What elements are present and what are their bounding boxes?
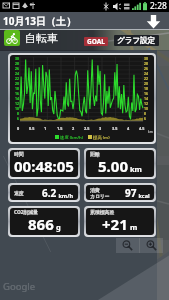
staticText: 10 [144,106,148,111]
button[interactable]: 距離 [86,150,154,177]
staticText: 速度 [14,190,24,196]
staticText: 28 [15,61,19,66]
staticText: 速度 (km/h) [59,134,83,140]
staticText: 累積標高差 [90,209,114,215]
staticText: 4.5 [139,126,145,131]
staticText: Google [3,280,36,293]
staticText: 866 [28,214,54,234]
button[interactable]: Zoom in [140,238,163,253]
button[interactable]: 消費 カロリー [86,185,154,200]
staticText: 16 [144,91,148,96]
staticText: 14 [144,96,148,101]
staticText: 26 [15,66,19,71]
button[interactable]: 10月13日（土） [0,12,169,30]
staticText: 18 [144,86,148,91]
staticText: 8 [17,111,19,116]
staticText: km [128,164,142,174]
staticText: 2 [72,126,75,131]
staticText: 標高 (m) [92,134,110,140]
staticText: 26 [144,66,148,71]
staticText: 時間 [14,151,24,157]
staticText: 22 [15,76,19,81]
staticText: 24 [144,71,148,76]
staticText: グラフ設定 [117,36,156,45]
staticText: 30 [15,56,19,61]
staticText: 24 [15,71,19,76]
staticText: 0 [17,126,20,131]
button[interactable]: 速度 [10,185,78,200]
staticText: km/h [57,192,74,199]
button[interactable]: Bicycle activity [4,30,20,46]
staticText: 30 [144,56,148,61]
staticText: 14 [15,96,19,101]
button[interactable]: CO2削減量 [10,208,78,235]
staticText: 22 [144,76,148,81]
staticText: kcal [137,192,150,199]
staticText: 自転車 [25,31,58,45]
staticText: 5.00 [98,156,128,176]
staticText: 18 [15,86,19,91]
staticText: 3 [99,126,102,131]
staticText: 6 [144,116,146,121]
staticText: g [54,222,61,232]
staticText: 8 [144,111,146,116]
button[interactable]: GOAL [84,37,108,46]
staticText: 10月13日（土） [3,14,76,28]
button[interactable]: 累積標高差 [86,208,154,235]
other: Download [146,14,161,29]
staticText: m [128,222,138,232]
staticText: 12 [15,101,19,106]
staticText: 距離 [90,151,100,157]
staticText: 20 [15,81,19,86]
staticText: 12 [144,101,148,106]
button[interactable]: 30 [10,55,154,142]
button[interactable]: Zoom out [116,238,139,253]
staticText: 00:48:05 [14,156,74,176]
staticText: 2:28 [150,0,167,12]
staticText: 消費 カロリー [90,187,110,199]
staticText: 3.5 [112,126,118,131]
staticText: 1 [44,126,47,131]
staticText: 20 [144,81,148,86]
staticText: 28 [144,61,148,66]
staticText: km [148,130,153,134]
staticText: 1.5 [57,126,63,131]
staticText: GOAL [87,37,105,46]
button[interactable]: グラフ設定 [114,35,159,46]
staticText: 2.5 [84,126,90,131]
staticText: 4 [127,126,130,131]
staticText: 97 [125,186,137,200]
button[interactable]: 時間 [10,150,78,177]
staticText: +21 [102,214,128,234]
staticText: 6 [17,116,19,121]
staticText: 16 [15,91,19,96]
staticText: CO2削減量 [14,209,38,216]
staticText: 6.2 [42,186,57,200]
staticText: 10 [15,106,19,111]
staticText: 0.5 [29,126,35,131]
